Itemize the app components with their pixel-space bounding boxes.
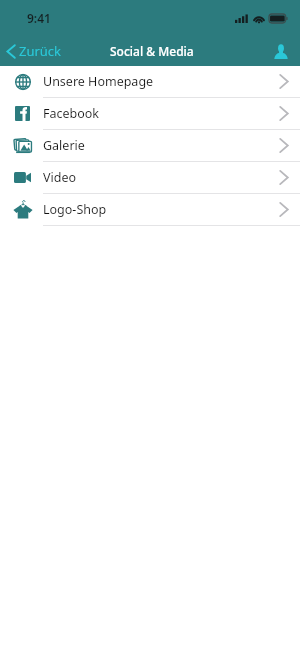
button[interactable]: Galerie bbox=[0, 130, 300, 161]
staticText: Facebook bbox=[43, 105, 100, 122]
button[interactable]: Video bbox=[0, 162, 300, 193]
staticText: Galerie bbox=[43, 137, 85, 154]
button[interactable]: Facebook bbox=[0, 98, 300, 129]
staticText: Social & Media bbox=[110, 43, 194, 59]
button[interactable]: Zurück bbox=[0, 42, 70, 60]
staticText: Video bbox=[43, 169, 77, 186]
staticText: Unsere Homepage bbox=[43, 73, 154, 90]
button[interactable]: Profile bbox=[264, 44, 300, 59]
staticText: Logo-Shop bbox=[43, 201, 107, 218]
staticText: Zurück bbox=[19, 42, 62, 60]
button[interactable]: Unsere Homepage bbox=[0, 66, 300, 97]
button[interactable]: Logo-Shop bbox=[0, 194, 300, 225]
staticText: 9:41 bbox=[27, 10, 51, 26]
